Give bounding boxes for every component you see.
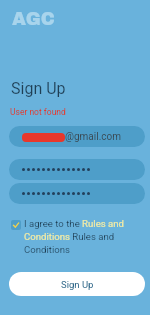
staticText: Sign Up	[11, 79, 66, 98]
button[interactable]: Agree to rules and conditions	[11, 218, 141, 255]
button[interactable]: @gmail.com	[9, 126, 145, 147]
staticText: Sign Up	[61, 279, 94, 290]
button[interactable]	[9, 183, 145, 204]
button[interactable]: Sign Up	[9, 272, 145, 296]
button[interactable]	[9, 159, 145, 180]
staticText: User not found	[10, 107, 66, 117]
staticText: @gmail.com	[65, 131, 122, 143]
other: Agree to rules and conditions	[11, 220, 21, 230]
staticText: I agree to the Rules and Conditions Rule…	[24, 218, 141, 255]
staticText: AGC	[12, 9, 55, 29]
